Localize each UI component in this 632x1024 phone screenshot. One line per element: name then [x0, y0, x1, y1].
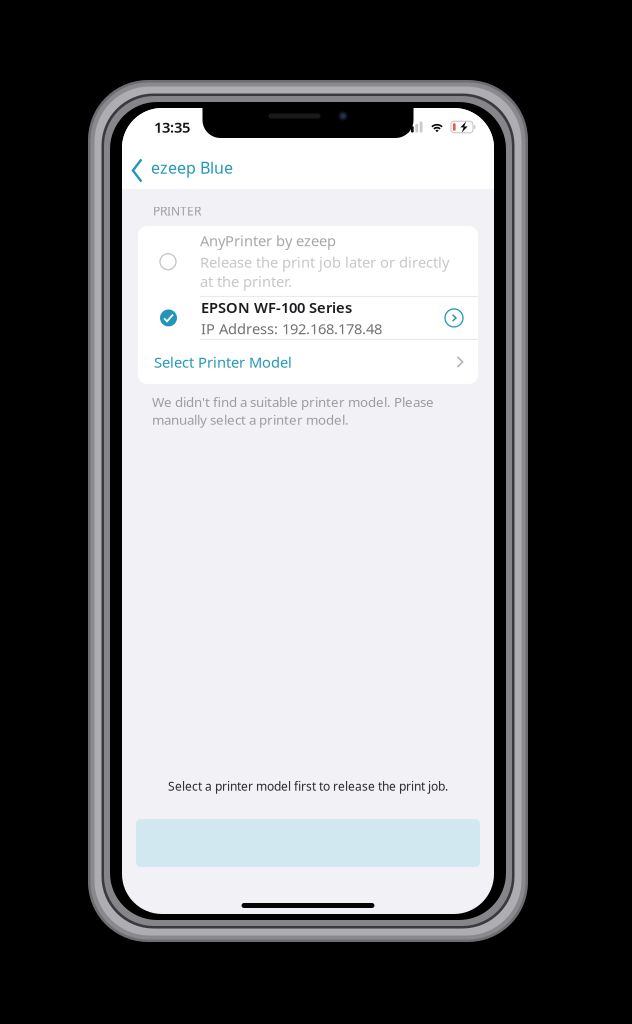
staticText: 13:35 [154, 117, 190, 137]
staticText: Select a printer model first to release … [168, 778, 448, 794]
staticText: IP Address: 192.168.178.48 [201, 319, 382, 338]
button[interactable]: Select Printer Model [138, 340, 478, 384]
staticText: EPSON WF-100 Series [201, 297, 352, 317]
staticText: PRINTER [153, 203, 201, 219]
staticText: AnyPrinter by ezeep [200, 231, 336, 250]
staticText: Release the print job later or directly … [200, 252, 449, 291]
button[interactable]: ezeep Blue [124, 146, 240, 189]
button[interactable]: AnyPrinter by ezeep [138, 226, 478, 296]
button[interactable]: EPSON WF-100 Series [138, 297, 478, 339]
staticText: ezeep Blue [151, 157, 233, 178]
staticText: We didn't find a suitable printer model.… [152, 393, 434, 428]
staticText: Select Printer Model [154, 352, 292, 372]
